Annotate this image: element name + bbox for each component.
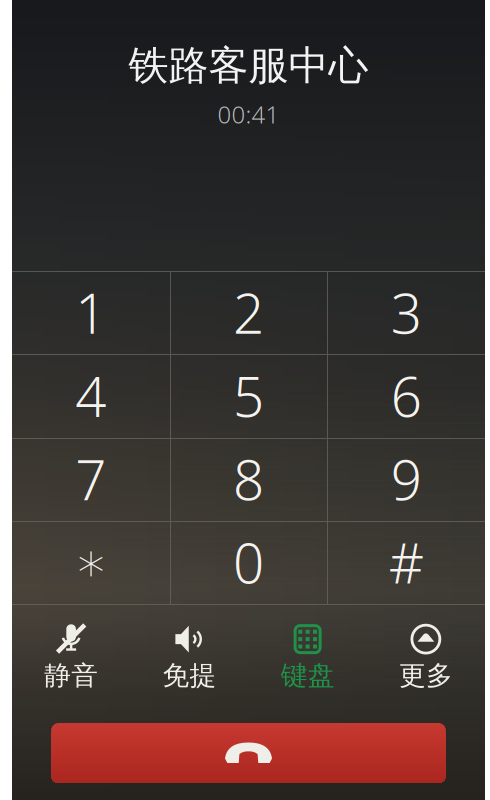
- staticText: 4: [75, 360, 106, 432]
- staticText: ∗: [74, 531, 108, 593]
- staticText: #: [389, 526, 424, 599]
- button[interactable]: 6: [327, 354, 485, 437]
- staticText: 7: [75, 443, 106, 515]
- button[interactable]: #: [327, 521, 485, 604]
- button[interactable]: 1: [12, 271, 170, 354]
- staticText: 00:41: [217, 98, 279, 130]
- button[interactable]: 8: [170, 437, 327, 521]
- staticText: 0: [233, 526, 264, 599]
- staticText: 8: [233, 443, 264, 515]
- staticText: 3: [391, 276, 422, 349]
- staticText: 静音: [44, 659, 98, 692]
- button[interactable]: 3: [327, 271, 485, 354]
- staticText: 9: [391, 443, 422, 515]
- staticText: 铁路客服中心: [128, 41, 368, 90]
- button[interactable]: 静音: [12, 616, 130, 691]
- staticText: 5: [233, 360, 264, 432]
- button[interactable]: 免提: [130, 616, 248, 691]
- button[interactable]: 9: [327, 437, 485, 521]
- staticText: 更多: [399, 659, 453, 692]
- button[interactable]: 5: [170, 354, 327, 437]
- staticText: 6: [391, 360, 422, 432]
- button[interactable]: 4: [12, 354, 170, 437]
- button[interactable]: 2: [170, 271, 327, 354]
- button[interactable]: 挂断: [51, 723, 445, 783]
- button[interactable]: 7: [12, 437, 170, 521]
- staticText: 2: [233, 276, 264, 349]
- button[interactable]: ∗: [12, 521, 170, 604]
- staticText: 1: [75, 276, 106, 349]
- staticText: 免提: [162, 659, 216, 692]
- button[interactable]: 键盘: [248, 616, 367, 691]
- button[interactable]: 0: [170, 521, 327, 604]
- button[interactable]: 更多: [367, 616, 485, 691]
- staticText: 键盘: [281, 659, 335, 692]
